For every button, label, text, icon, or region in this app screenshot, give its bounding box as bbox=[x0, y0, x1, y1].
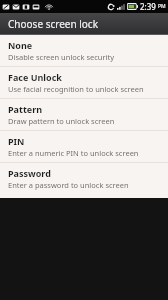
button[interactable]: Password bbox=[0, 163, 168, 194]
staticText: Enter a password to unlock screen bbox=[8, 180, 129, 190]
staticText: Face Unlock bbox=[8, 71, 62, 83]
staticText: Disable screen unlock security bbox=[8, 52, 115, 62]
staticText: Draw pattern to unlock screen bbox=[8, 116, 115, 126]
button[interactable]: None bbox=[0, 35, 168, 66]
staticText: PM bbox=[158, 3, 166, 10]
staticText: Choose screen lock bbox=[8, 17, 98, 31]
staticText: PIN bbox=[8, 135, 25, 147]
staticText: 2:39 bbox=[140, 1, 156, 12]
staticText: None bbox=[8, 39, 33, 51]
staticText: Enter a numeric PIN to unlock screen bbox=[8, 148, 139, 158]
staticText: Password bbox=[8, 167, 51, 179]
button[interactable]: Face Unlock bbox=[0, 67, 168, 98]
button[interactable]: PIN bbox=[0, 131, 168, 162]
staticText: Pattern bbox=[8, 103, 43, 115]
button[interactable]: Pattern bbox=[0, 99, 168, 130]
staticText: Use facial recognition to unlock screen bbox=[8, 84, 144, 94]
